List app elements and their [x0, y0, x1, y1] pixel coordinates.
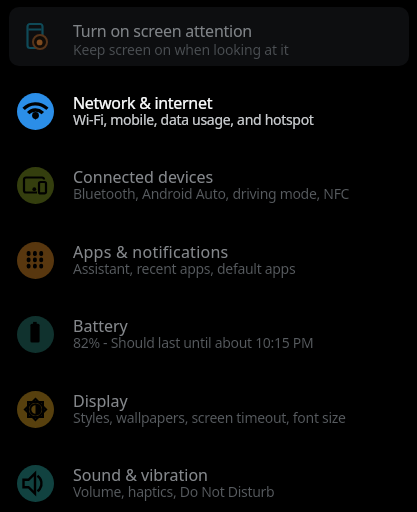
staticText: Wi-Fi, mobile, data usage, and hotspot — [73, 110, 314, 129]
staticText: Volume, haptics, Do Not Disturb — [73, 482, 275, 501]
staticText: Apps & notifications — [73, 241, 229, 263]
staticText: Display — [73, 390, 128, 412]
staticText: Keep screen on when looking at it — [73, 40, 289, 59]
staticText: Assistant, recent apps, default apps — [73, 259, 296, 278]
staticText: Battery — [73, 315, 128, 337]
staticText: Turn on screen attention — [73, 20, 253, 42]
staticText: Sound & vibration — [73, 464, 208, 486]
staticText: Styles, wallpapers, screen timeout, font… — [73, 408, 346, 427]
staticText: Bluetooth, Android Auto, driving mode, N… — [73, 184, 350, 203]
staticText: Network & internet — [73, 92, 213, 114]
staticText: Connected devices — [73, 166, 214, 188]
staticText: 82% - Should last until about 10:15 PM — [73, 333, 314, 352]
